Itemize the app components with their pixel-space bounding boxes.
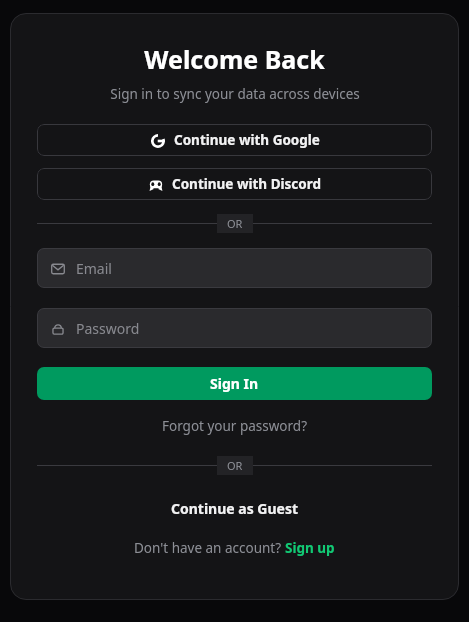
button[interactable]: Email bbox=[37, 248, 432, 288]
button[interactable]: Sign In bbox=[37, 367, 432, 400]
button[interactable]: Google bbox=[37, 124, 432, 156]
staticText: Continue as Guest bbox=[171, 499, 299, 518]
staticText: Sign In bbox=[210, 374, 259, 393]
staticText: Sign in to sync your data across devices bbox=[110, 85, 360, 103]
staticText: Sign up bbox=[285, 539, 335, 557]
button[interactable]: Password bbox=[37, 308, 432, 348]
staticText: Welcome Back bbox=[144, 42, 325, 76]
staticText: OR bbox=[227, 458, 243, 473]
staticText: Email bbox=[76, 259, 112, 278]
button[interactable]: Continue as Guest bbox=[163, 495, 307, 522]
staticText: Forgot your password? bbox=[162, 417, 308, 435]
other: Discord bbox=[149, 178, 163, 192]
staticText: Password bbox=[76, 319, 140, 338]
button[interactable]: Discord bbox=[37, 168, 432, 200]
button[interactable]: Sign up bbox=[285, 539, 335, 557]
staticText: OR bbox=[227, 216, 243, 231]
staticText: Don't have an account? bbox=[134, 539, 285, 557]
staticText: Continue with Google bbox=[174, 131, 320, 149]
other: Google bbox=[151, 134, 165, 148]
staticText: Continue with Discord bbox=[172, 175, 322, 193]
button[interactable]: Forgot your password? bbox=[156, 414, 314, 438]
